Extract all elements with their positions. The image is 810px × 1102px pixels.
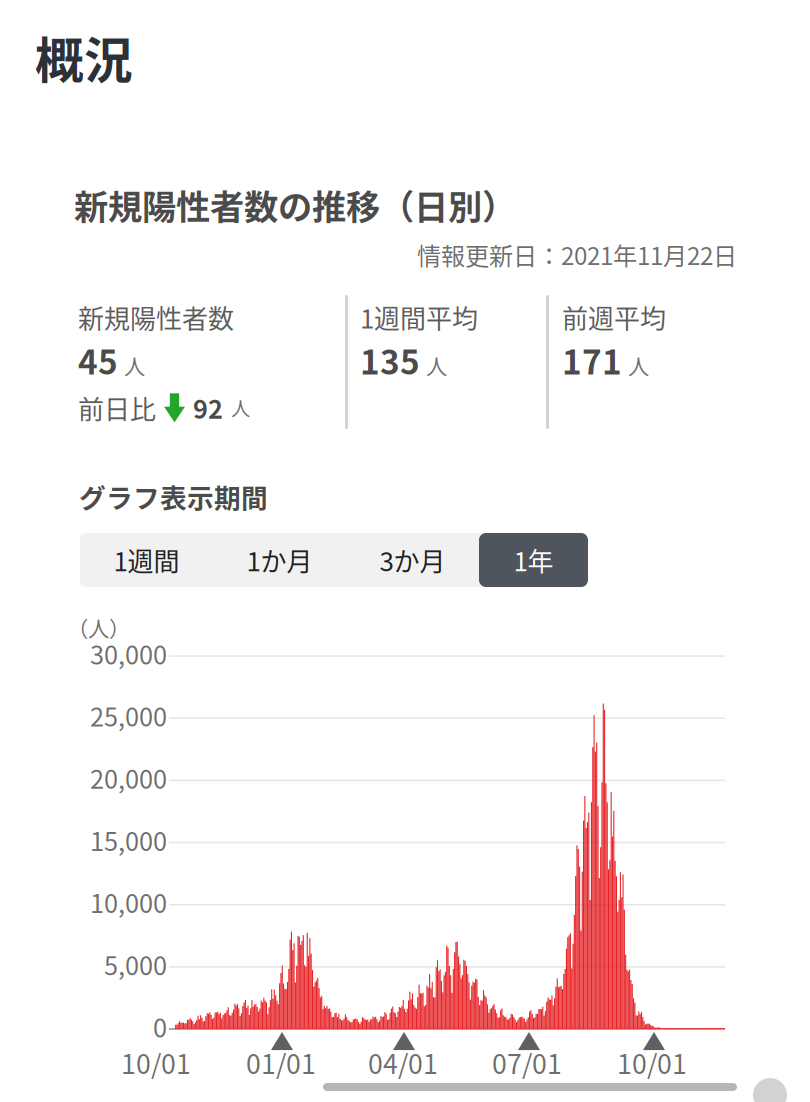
staticText: 30,000 xyxy=(90,635,167,672)
staticText: 前週平均 xyxy=(562,298,666,336)
staticText: 07/01 xyxy=(492,1043,562,1082)
staticText: 人 xyxy=(124,350,145,381)
staticText: 概況 xyxy=(35,22,133,92)
staticText: 45 xyxy=(78,336,118,384)
staticText: 新規陽性者数の推移（日別） xyxy=(74,180,516,230)
staticText: 10,000 xyxy=(90,884,167,920)
staticText: 04/01 xyxy=(368,1043,438,1082)
button[interactable]: 3か月 xyxy=(346,533,479,587)
staticText: 人 xyxy=(426,350,447,381)
staticText: 10/01 xyxy=(617,1043,687,1082)
staticText: 15,000 xyxy=(90,821,167,858)
staticText: 3か月 xyxy=(379,541,445,579)
staticText: 92 xyxy=(193,389,223,426)
staticText: 1週間 xyxy=(113,541,179,579)
staticText: （人） xyxy=(67,612,130,643)
button[interactable]: 1週間 xyxy=(80,533,213,587)
staticText: 10/01 xyxy=(121,1043,191,1082)
staticText: グラフ表示期間 xyxy=(79,477,268,516)
staticText: 171 xyxy=(562,336,622,384)
button[interactable]: 1か月 xyxy=(213,533,346,587)
staticText: 新規陽性者数 xyxy=(78,298,234,336)
button[interactable]: ページトップへ戻る xyxy=(753,1078,787,1102)
staticText: 135 xyxy=(360,336,420,384)
staticText: 前日比 xyxy=(78,389,156,427)
staticText: 1か月 xyxy=(246,541,312,579)
staticText: 01/01 xyxy=(246,1043,316,1082)
button[interactable]: 1年 xyxy=(479,533,588,587)
staticText: 0 xyxy=(153,1008,167,1045)
staticText: 1週間平均 xyxy=(360,298,478,336)
staticText: 情報更新日：2021年11月22日 xyxy=(417,237,737,272)
staticText: 20,000 xyxy=(90,759,167,796)
staticText: 人 xyxy=(231,394,250,422)
staticText: 5,000 xyxy=(104,946,167,982)
staticText: 人 xyxy=(628,350,649,381)
staticText: 25,000 xyxy=(90,697,167,734)
staticText: 1年 xyxy=(513,541,553,579)
